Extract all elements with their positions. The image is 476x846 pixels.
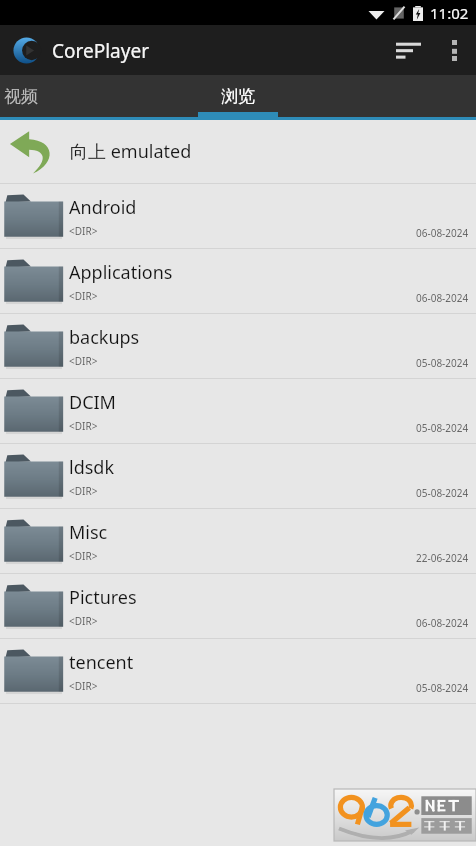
- staticText: CorePlayer: [52, 38, 149, 64]
- staticText: 05-08-2024: [416, 421, 469, 435]
- staticText: Applications: [69, 260, 173, 285]
- staticText: <DIR>: [69, 354, 98, 368]
- staticText: 06-08-2024: [416, 226, 469, 240]
- button[interactable]: Applications: [0, 249, 476, 313]
- button[interactable]: backups: [0, 314, 476, 378]
- staticText: backups: [69, 325, 140, 350]
- button[interactable]: DCIM: [0, 379, 476, 443]
- button[interactable]: Android: [0, 184, 476, 248]
- button[interactable]: 浏览: [198, 75, 278, 117]
- staticText: <DIR>: [69, 419, 98, 433]
- staticText: 05-08-2024: [416, 356, 469, 370]
- staticText: <DIR>: [69, 224, 98, 238]
- staticText: 05-08-2024: [416, 681, 469, 695]
- staticText: Pictures: [69, 585, 137, 610]
- button[interactable]: ldsdk: [0, 444, 476, 508]
- staticText: 浏览: [221, 86, 255, 107]
- staticText: tencent: [69, 650, 134, 675]
- button[interactable]: 向上 emulated: [0, 120, 476, 183]
- button[interactable]: 视频: [0, 75, 198, 117]
- staticText: 06-08-2024: [416, 291, 469, 305]
- button[interactable]: Sort: [384, 26, 432, 74]
- staticText: DCIM: [69, 390, 116, 415]
- button[interactable]: Pictures: [0, 574, 476, 638]
- staticText: <DIR>: [69, 614, 98, 628]
- button[interactable]: Misc: [0, 509, 476, 573]
- staticText: 05-08-2024: [416, 486, 469, 500]
- staticText: <DIR>: [69, 679, 98, 693]
- staticText: 11:02: [430, 3, 469, 23]
- staticText: 视频: [4, 86, 38, 107]
- staticText: 06-08-2024: [416, 616, 469, 630]
- button[interactable]: tencent: [0, 639, 476, 703]
- staticText: <DIR>: [69, 484, 98, 498]
- staticText: 向上 emulated: [70, 139, 192, 164]
- button[interactable]: More options: [432, 28, 476, 72]
- staticText: <DIR>: [69, 549, 98, 563]
- staticText: ldsdk: [69, 455, 115, 480]
- staticText: Misc: [69, 520, 108, 545]
- staticText: Android: [69, 195, 137, 220]
- staticText: 22-06-2024: [416, 551, 469, 565]
- staticText: <DIR>: [69, 289, 98, 303]
